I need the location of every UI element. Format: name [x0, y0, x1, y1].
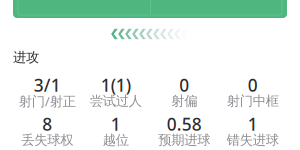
button[interactable]: 0	[150, 78, 218, 107]
staticText: 1	[248, 112, 258, 135]
staticText: 进攻	[13, 49, 39, 65]
staticText: 丢失球权	[21, 132, 73, 148]
staticText: 射门/射正	[19, 92, 76, 110]
staticText: 越位	[103, 132, 129, 148]
staticText: 0	[248, 73, 258, 96]
staticText: 1(1)	[101, 73, 131, 96]
button[interactable]: 0	[218, 78, 287, 107]
staticText: 3/1	[34, 73, 61, 96]
staticText: 射门中框	[227, 93, 279, 109]
staticText: 8	[42, 112, 52, 135]
staticText: 0	[179, 73, 189, 96]
button[interactable]: 1	[81, 117, 150, 146]
staticText: 预期进球	[158, 132, 210, 148]
staticText: 1	[111, 112, 121, 135]
staticText: 错失进球	[227, 132, 279, 148]
button[interactable]: 3/1	[13, 78, 81, 107]
staticText: 尝试过人	[90, 93, 142, 109]
button[interactable]: 1(1)	[81, 78, 150, 107]
staticText: 射偏	[171, 93, 197, 109]
button[interactable]: 1	[218, 117, 287, 146]
button[interactable]: 进攻	[13, 49, 39, 65]
button[interactable]: 0.58	[150, 117, 218, 146]
button[interactable]: 8	[13, 117, 81, 146]
staticText: 0.58	[167, 112, 202, 135]
